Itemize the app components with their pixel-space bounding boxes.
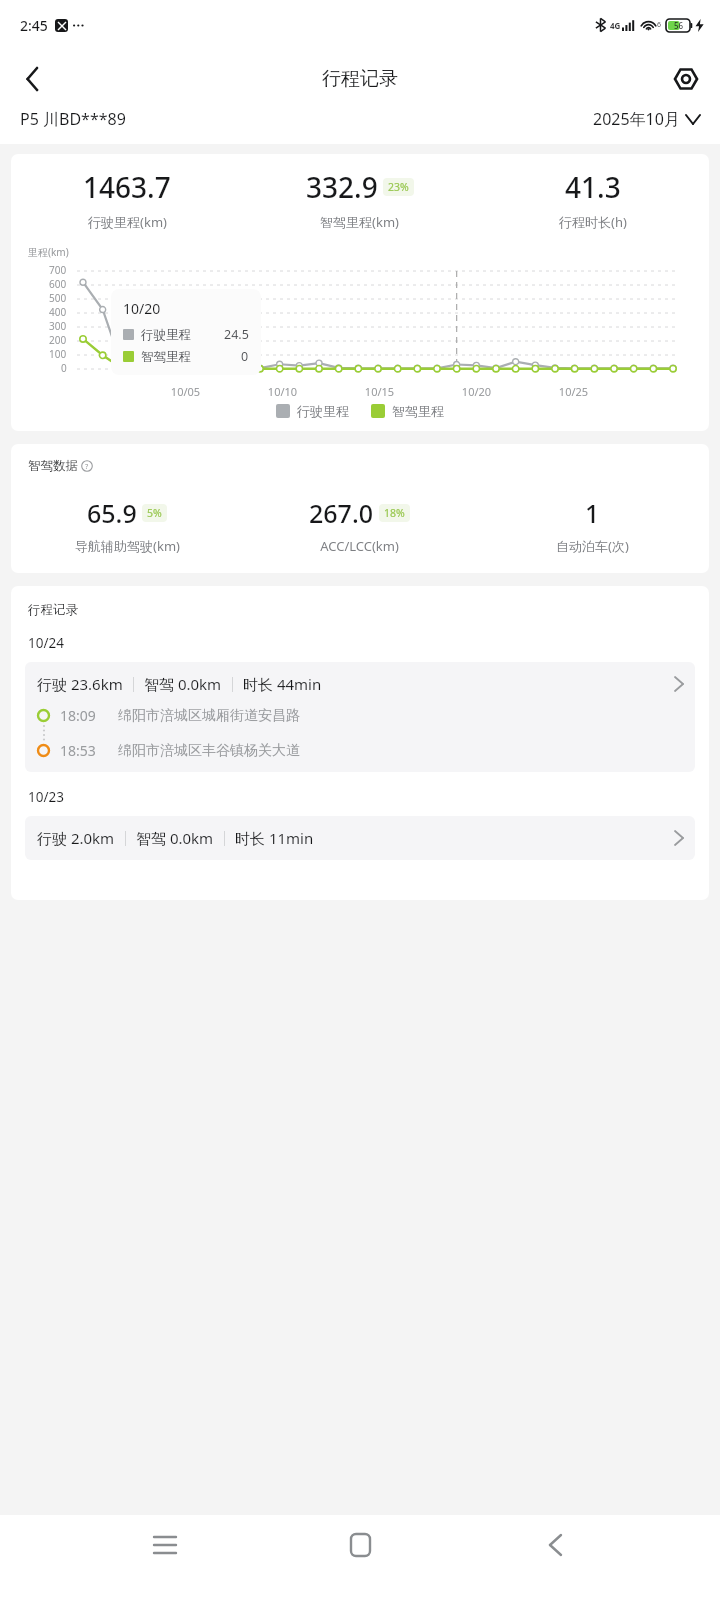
staticText: 绵阳市涪城区城厢街道安昌路 [118, 707, 300, 725]
staticText: 行驶 23.6km [37, 674, 123, 694]
button[interactable]: 行驶 2.0km [25, 816, 695, 860]
staticText: 41.3 [565, 168, 621, 206]
staticText: 4G [610, 20, 621, 31]
staticText: 10/24 [28, 634, 64, 652]
button[interactable]: 行驶 23.6km [25, 662, 695, 772]
staticText: 1463.7 [83, 168, 171, 206]
staticText: 智驾 0.0km [136, 828, 214, 848]
staticText: 18:09 [60, 706, 96, 725]
staticText: 5% [147, 506, 162, 520]
staticText: 智驾 0.0km [144, 674, 222, 694]
staticText: 自动泊车(次) [556, 537, 629, 555]
staticText: 200 [49, 333, 67, 347]
staticText: 18:53 [60, 741, 96, 760]
staticText: 10/23 [28, 788, 64, 806]
staticText: 18% [384, 506, 405, 520]
staticText: 行程记录 [28, 602, 78, 618]
staticText: 267.0 [309, 496, 374, 530]
staticText: 智驾里程 [392, 403, 444, 419]
staticText: 时长 44min [243, 674, 322, 694]
staticText: 332.9 [306, 168, 378, 206]
staticText: 绵阳市涪城区丰谷镇杨关大道 [118, 742, 300, 760]
button[interactable]: 设置 [662, 55, 710, 103]
button[interactable]: 返回 [525, 1515, 585, 1575]
staticText: 600 [49, 277, 67, 291]
button[interactable]: 返回 [8, 55, 56, 103]
staticText: ACC/LCC(km) [320, 537, 399, 555]
staticText: 行驶里程(km) [88, 213, 167, 231]
button[interactable]: 最近任务 [135, 1515, 195, 1575]
staticText: 65.9 [87, 496, 137, 530]
staticText: 10/20 [123, 299, 161, 318]
staticText: 10/20 [428, 384, 525, 399]
staticText: 行驶 2.0km [37, 828, 115, 848]
staticText: 300 [49, 319, 67, 333]
staticText: 56 [674, 20, 684, 31]
staticText: 行驶里程 [297, 403, 349, 419]
staticText: 10/15 [331, 384, 428, 399]
staticText: 400 [49, 305, 67, 319]
staticText: 500 [49, 291, 67, 305]
staticText: 导航辅助驾驶(km) [75, 537, 180, 555]
staticText: 100 [49, 347, 67, 361]
staticText: 0 [61, 361, 67, 374]
staticText: 时长 11min [235, 828, 314, 848]
staticText: 里程(km) [28, 245, 69, 259]
staticText: 6 [657, 20, 662, 30]
staticText: 行程记录 [322, 67, 398, 91]
button[interactable]: 帮助说明 [81, 460, 93, 472]
staticText: ? [85, 461, 89, 471]
staticText: 0 [241, 348, 249, 365]
staticText: 10/25 [525, 384, 622, 399]
staticText: 10/05 [137, 384, 234, 399]
staticText: 智驾里程(km) [320, 213, 399, 231]
staticText: 行程时长(h) [559, 213, 627, 231]
staticText: 1 [585, 496, 600, 530]
staticText: 24.5 [224, 326, 249, 343]
staticText: 23% [388, 180, 409, 194]
staticText: 智驾里程 [141, 349, 191, 365]
button[interactable]: 2025年10月 [593, 108, 700, 130]
staticText: P5 川BD***89 [20, 108, 126, 130]
staticText: 2025年10月 [593, 108, 680, 130]
staticText: 智驾数据 [28, 458, 78, 474]
staticText: 700 [49, 263, 67, 277]
staticText: 2:45 [20, 16, 48, 35]
staticText: 10/10 [234, 384, 331, 399]
button[interactable]: 主页 [330, 1515, 390, 1575]
staticText: 行驶里程 [141, 327, 191, 343]
